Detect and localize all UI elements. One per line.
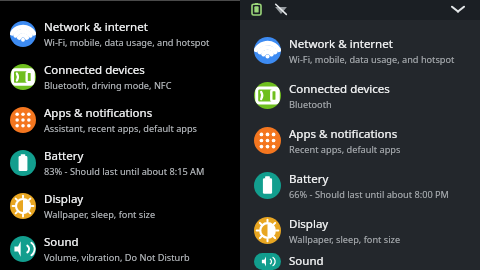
staticText: Sound (289, 253, 324, 269)
staticText: Bluetooth (289, 98, 332, 111)
button[interactable]: Network & internet (240, 28, 480, 73)
button[interactable]: Apps & notifications (0, 98, 240, 141)
staticText: Wi-Fi, mobile, data usage, and hotspot (289, 53, 455, 66)
staticText: Display (44, 191, 84, 207)
staticText: Bluetooth, driving mode, NFC (44, 79, 172, 92)
staticText: Battery (44, 148, 84, 164)
staticText: Network & internet (44, 19, 148, 35)
staticText: Wallpaper, sleep, font size (289, 233, 401, 246)
button[interactable]: Display (240, 208, 480, 253)
button[interactable]: Network & internet (0, 12, 240, 55)
staticText: Apps & notifications (44, 105, 153, 121)
button[interactable]: Connected devices (0, 55, 240, 98)
staticText: Assistant, recent apps, default apps (44, 122, 197, 135)
staticText: Apps & notifications (289, 126, 398, 142)
button[interactable]: Sound (240, 253, 480, 270)
staticText: Recent apps, default apps (289, 143, 401, 156)
button[interactable]: Battery (240, 163, 480, 208)
staticText: Wi-Fi, mobile, data usage, and hotspot (44, 36, 210, 49)
staticText: Network & internet (289, 36, 393, 52)
staticText: Connected devices (289, 81, 390, 97)
staticText: 66% - Should last until about 8:00 PM (289, 188, 449, 201)
button[interactable]: Sound (0, 227, 240, 270)
button[interactable]: Connected devices (240, 73, 480, 118)
staticText: Connected devices (44, 62, 145, 78)
staticText: Wallpaper, sleep, font size (44, 208, 156, 221)
staticText: 83% - Should last until about 8:15 AM (44, 165, 205, 178)
other: Expand (452, 5, 464, 13)
button[interactable]: Display (0, 184, 240, 227)
button[interactable]: Apps & notifications (240, 118, 480, 163)
button[interactable]: Battery (0, 141, 240, 184)
staticText: Display (289, 216, 329, 232)
staticText: Battery (289, 171, 329, 187)
staticText: Sound (44, 234, 79, 250)
staticText: Volume, vibration, Do Not Disturb (44, 251, 190, 264)
